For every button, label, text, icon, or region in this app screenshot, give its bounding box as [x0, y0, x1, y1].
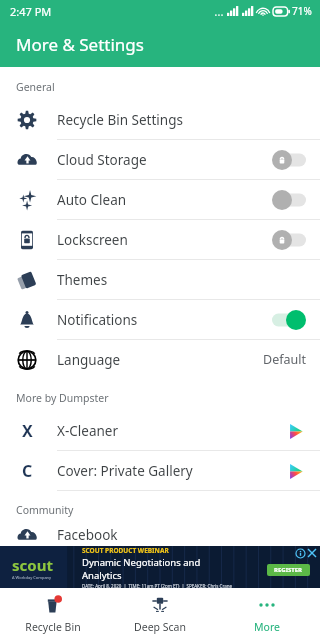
- staticText: More & Settings: [16, 33, 144, 56]
- staticText: Dynamic Negotiations and Analytics: [82, 556, 242, 582]
- button[interactable]: Cloud Storage: [0, 140, 320, 180]
- button[interactable]: Toggle off: [272, 230, 306, 250]
- button[interactable]: REGISTER: [267, 564, 310, 576]
- staticText: X-Cleaner: [57, 422, 284, 440]
- button[interactable]: C: [0, 451, 320, 491]
- staticText: Language: [57, 351, 263, 369]
- staticText: Cloud Storage: [57, 151, 272, 169]
- button[interactable]: Auto Clean: [0, 180, 320, 220]
- button[interactable]: Facebook: [0, 523, 320, 546]
- staticText: C: [22, 460, 33, 482]
- staticText: Lockscreen: [57, 231, 272, 249]
- button[interactable]: scout: [0, 546, 320, 588]
- staticText: Facebook: [57, 526, 306, 544]
- button[interactable]: Ad info: [295, 548, 306, 559]
- staticText: Cover: Private Gallery: [57, 462, 284, 480]
- staticText: Community: [16, 503, 320, 517]
- staticText: SCOUT PRODUCT WEBINAR: [82, 546, 169, 555]
- staticText: More: [254, 620, 280, 634]
- staticText: 71%: [292, 4, 312, 18]
- button[interactable]: Language: [0, 340, 320, 379]
- staticText: Default: [263, 351, 306, 368]
- button[interactable]: Toggle off: [272, 190, 306, 210]
- staticText: Themes: [57, 271, 306, 289]
- staticText: 2:47 PM: [10, 4, 52, 19]
- staticText: Auto Clean: [57, 191, 272, 209]
- staticText: scout: [12, 555, 53, 575]
- staticText: Deep Scan: [134, 620, 186, 634]
- button[interactable]: Toggle off: [272, 150, 306, 170]
- staticText: Notifications: [57, 311, 272, 329]
- staticText: REGISTER: [274, 566, 303, 574]
- button[interactable]: Open in Google Play: [284, 420, 306, 442]
- staticText: X: [22, 420, 33, 442]
- staticText: Recycle Bin Settings: [57, 111, 306, 129]
- button[interactable]: Deep Scan: [106, 588, 213, 640]
- button[interactable]: Toggle on: [272, 310, 306, 330]
- button[interactable]: X: [0, 411, 320, 451]
- button[interactable]: Close ad: [306, 547, 318, 559]
- button[interactable]: More: [213, 588, 320, 640]
- staticText: DATE: April 8, 2020 | TIME: 11am PT (2pm…: [82, 583, 233, 588]
- button[interactable]: Notifications: [0, 300, 320, 340]
- staticText: More by Dumpster: [16, 391, 320, 405]
- button[interactable]: Open in Google Play: [284, 460, 306, 482]
- staticText: General: [16, 80, 320, 94]
- button[interactable]: Themes: [0, 260, 320, 300]
- button[interactable]: Recycle Bin: [0, 588, 106, 640]
- staticText: Recycle Bin: [25, 620, 81, 634]
- button[interactable]: Lockscreen: [0, 220, 320, 260]
- staticText: A Workday Company: [12, 575, 52, 580]
- button[interactable]: Recycle Bin Settings: [0, 100, 320, 140]
